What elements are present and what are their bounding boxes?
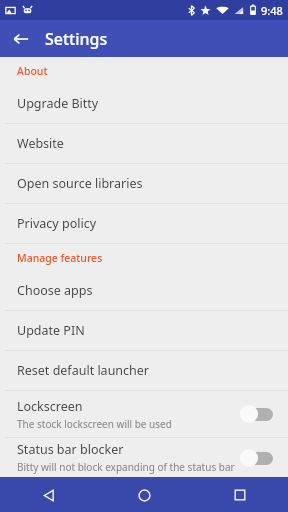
staticText: Reset default launcher	[17, 362, 150, 379]
staticText: Bitty will not block expanding of the st…	[17, 460, 235, 474]
staticText: Choose apps	[17, 282, 93, 299]
button[interactable]: Home	[129, 480, 159, 510]
staticText: Settings	[45, 28, 108, 50]
staticText: 9:48	[261, 3, 283, 18]
button[interactable]: Back	[8, 26, 34, 52]
button[interactable]: Update PIN	[0, 311, 288, 350]
button[interactable]: Back	[33, 480, 63, 510]
button[interactable]: Status bar blocker	[0, 438, 288, 477]
staticText: Open source libraries	[17, 175, 143, 192]
staticText: Upgrade Bitty	[17, 95, 99, 112]
button[interactable]: Privacy policy	[0, 204, 288, 243]
button[interactable]: Reset default launcher	[0, 351, 288, 390]
button[interactable]: Open source libraries	[0, 164, 288, 203]
staticText: Lockscreen	[17, 398, 83, 415]
staticText: The stock lockscreen will be used	[17, 417, 172, 431]
staticText: Status bar blocker	[17, 441, 124, 458]
staticText: About	[17, 64, 48, 78]
staticText: Website	[17, 135, 64, 152]
button[interactable]: Choose apps	[0, 271, 288, 310]
button[interactable]: Website	[0, 124, 288, 163]
staticText: Privacy policy	[17, 215, 97, 232]
button[interactable]: Upgrade Bitty	[0, 84, 288, 123]
button[interactable]: Recents	[225, 480, 255, 510]
staticText: Manage features	[17, 251, 103, 265]
staticText: Update PIN	[17, 322, 85, 339]
button[interactable]: Lockscreen	[0, 391, 288, 437]
